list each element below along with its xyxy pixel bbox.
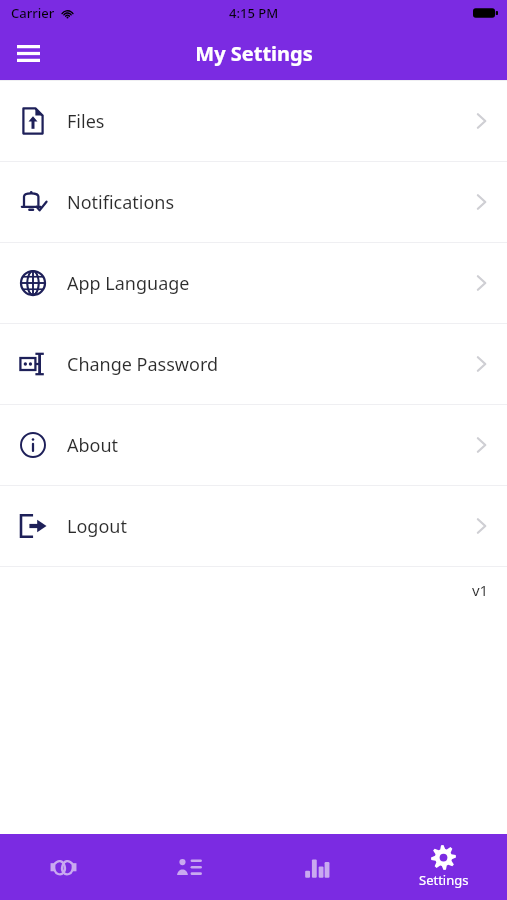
button[interactable]: About bbox=[0, 405, 507, 485]
staticText: About bbox=[67, 433, 119, 458]
staticText: My Settings bbox=[195, 40, 313, 67]
button[interactable]: Contacts bbox=[126, 834, 253, 900]
staticText: v1 bbox=[472, 580, 489, 600]
button[interactable]: Menu bbox=[8, 33, 48, 73]
staticText: Notifications bbox=[67, 190, 175, 215]
button[interactable]: Deals bbox=[0, 834, 126, 900]
staticText: App Language bbox=[67, 271, 190, 296]
button[interactable]: Settings bbox=[380, 834, 507, 900]
staticText: 4:15 PM bbox=[229, 4, 279, 22]
staticText: Logout bbox=[67, 514, 127, 539]
button[interactable]: Files bbox=[0, 81, 507, 161]
button[interactable]: App Language bbox=[0, 243, 507, 323]
button[interactable]: Notifications bbox=[0, 162, 507, 242]
staticText: Settings bbox=[419, 871, 469, 889]
button[interactable]: Reports bbox=[253, 834, 380, 900]
staticText: Carrier bbox=[11, 4, 55, 22]
button[interactable]: Change Password bbox=[0, 324, 507, 404]
staticText: Change Password bbox=[67, 352, 219, 377]
staticText: Files bbox=[67, 109, 105, 134]
button[interactable]: Logout bbox=[0, 486, 507, 566]
